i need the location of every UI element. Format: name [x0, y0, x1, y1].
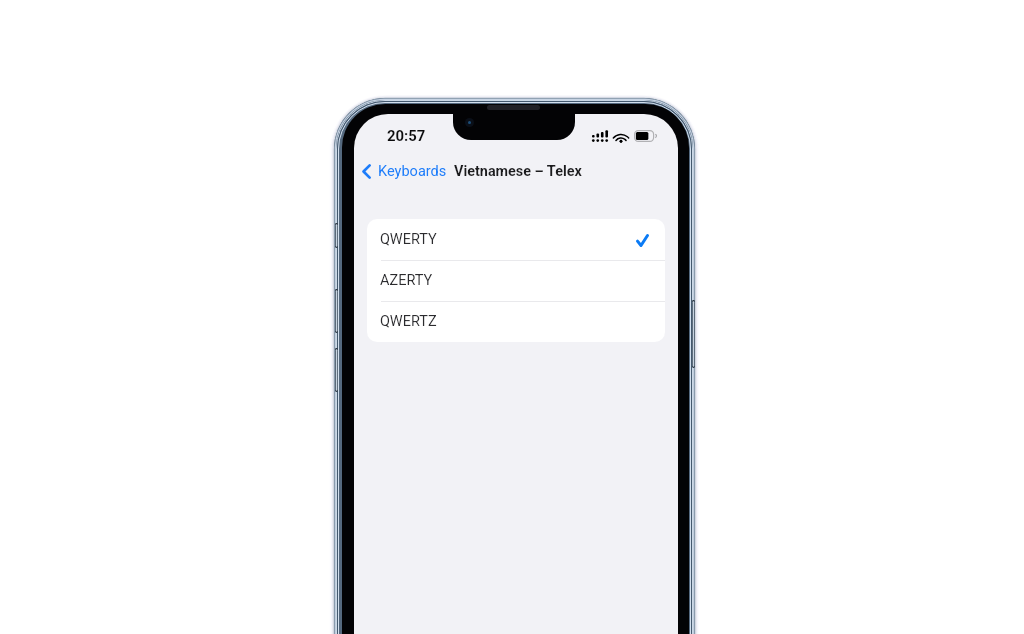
- button[interactable]: QWERTZ: [367, 301, 665, 342]
- button[interactable]: Keyboards: [358, 157, 453, 186]
- staticText: QWERTY: [380, 231, 437, 248]
- staticText: Keyboards: [378, 163, 447, 180]
- staticText: QWERTZ: [380, 313, 437, 330]
- staticText: 20:57: [387, 127, 426, 144]
- button[interactable]: AZERTY: [367, 260, 665, 301]
- staticText: AZERTY: [380, 272, 433, 289]
- staticText: Vietnamese – Telex: [454, 163, 582, 180]
- button[interactable]: QWERTY: [367, 219, 665, 260]
